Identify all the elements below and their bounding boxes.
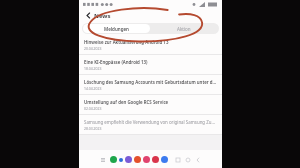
staticText: 18.04.2023	[84, 66, 102, 71]
button[interactable]: Aktion	[150, 24, 218, 33]
button[interactable]: Eine KI-Engpässe (Android 13)	[79, 55, 222, 74]
button[interactable]: App 4	[134, 156, 141, 163]
staticText: Aktion	[177, 26, 191, 32]
staticText: News	[94, 12, 111, 20]
button[interactable]: App 2	[119, 158, 123, 162]
button[interactable]: App 3	[125, 156, 132, 163]
button[interactable]: Samsung empfiehlt die Verwendung von ori…	[79, 115, 222, 134]
staticText: Hinweise zur Aktualisierung Android 13	[84, 39, 169, 45]
staticText: Umstellung auf den Google RCS Service	[84, 99, 169, 105]
staticText: 02.04.2023	[84, 106, 102, 111]
staticText: Eine KI-Engpässe (Android 13)	[84, 59, 148, 65]
button[interactable]: App 6	[152, 156, 159, 163]
button[interactable]: Meldungen	[83, 24, 150, 33]
button[interactable]: App 5	[143, 156, 150, 163]
staticText: 28.03.2023	[84, 126, 102, 131]
button[interactable]: Hinweise zur Aktualisierung Android 13	[79, 35, 222, 54]
button[interactable]: Umstellung auf den Google RCS Service	[79, 95, 222, 114]
staticText: Samsung empfiehlt die Verwendung von ori…	[84, 119, 217, 125]
staticText: 20.04.2023	[84, 46, 102, 51]
button[interactable]: App 1	[110, 156, 117, 163]
button[interactable]: App 7	[161, 156, 168, 163]
staticText: 14.04.2023	[84, 86, 102, 91]
staticText: Löschung des Samsung Accounts mit Geburt…	[84, 79, 217, 85]
button[interactable]: Back	[84, 11, 93, 20]
button[interactable]: Back	[195, 157, 201, 163]
staticText: Meldungen	[104, 26, 129, 32]
button[interactable]: Löschung des Samsung Accounts mit Geburt…	[79, 75, 222, 94]
button[interactable]: Home	[185, 157, 191, 163]
button[interactable]: Recents	[175, 157, 181, 163]
button[interactable]: Menu	[99, 156, 106, 163]
